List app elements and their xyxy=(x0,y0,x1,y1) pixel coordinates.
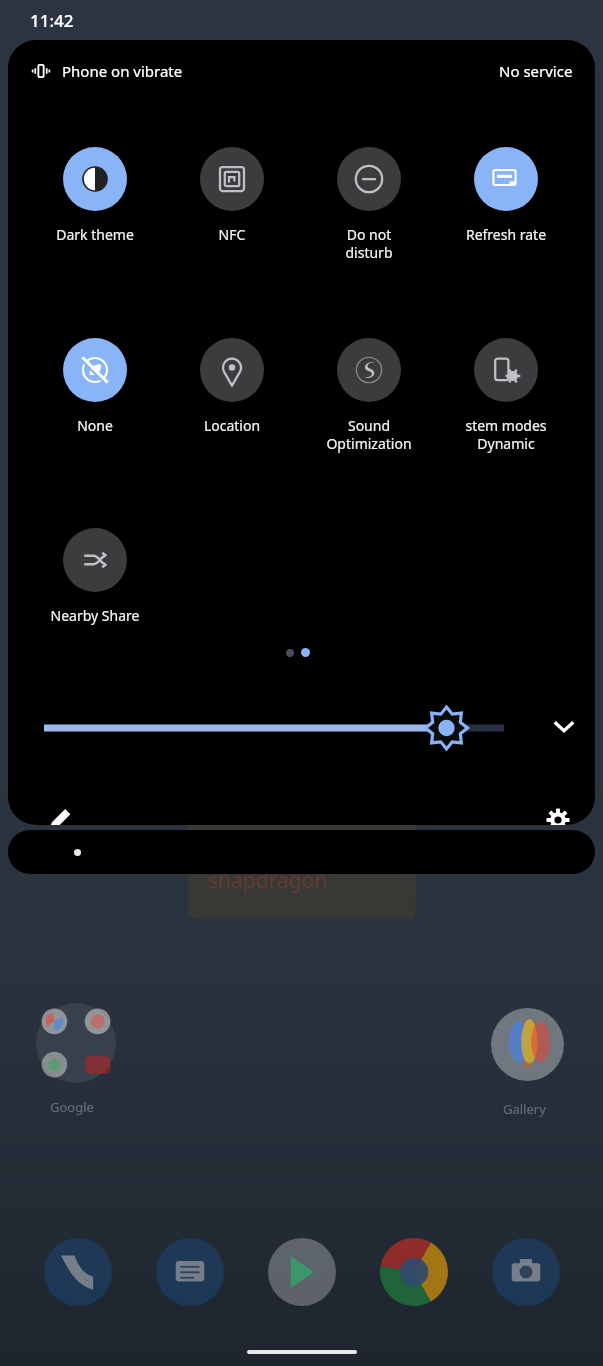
staticText: NFC xyxy=(172,225,292,244)
button[interactable]: Refresh rate xyxy=(446,147,566,244)
staticText: None xyxy=(35,416,155,435)
staticText: Dark theme xyxy=(35,225,155,244)
button[interactable]: Expand xyxy=(538,700,590,752)
button[interactable]: None xyxy=(35,338,155,435)
staticText: Phone on vibrate xyxy=(62,61,183,81)
staticText: Gallery xyxy=(503,1100,546,1118)
staticText: No service xyxy=(499,61,573,81)
staticText: Refresh rate xyxy=(446,225,566,244)
button[interactable]: Dark theme xyxy=(35,147,155,244)
button[interactable]: stem modes Dynamic xyxy=(446,338,566,453)
staticText: stem modes Dynamic xyxy=(446,416,566,453)
staticText: Do not disturb xyxy=(309,225,429,262)
button[interactable]: Do not disturb xyxy=(309,147,429,262)
button[interactable] xyxy=(8,830,595,874)
button[interactable]: Nearby Share xyxy=(35,528,155,625)
staticText: Nearby Share xyxy=(35,606,155,625)
button[interactable]: NFC xyxy=(172,147,292,244)
button[interactable]: Sound Optimization xyxy=(309,338,429,453)
staticText: Sound Optimization xyxy=(309,416,429,453)
button[interactable]: Settings xyxy=(534,796,582,825)
staticText: Location xyxy=(172,416,292,435)
button[interactable]: Location xyxy=(172,338,292,435)
staticText: snapdragon xyxy=(208,866,328,895)
button[interactable]: Edit tiles xyxy=(36,796,84,825)
staticText: Google xyxy=(50,1098,94,1116)
staticText: 11:42 xyxy=(30,9,74,32)
button[interactable]: Brightness xyxy=(44,700,504,756)
